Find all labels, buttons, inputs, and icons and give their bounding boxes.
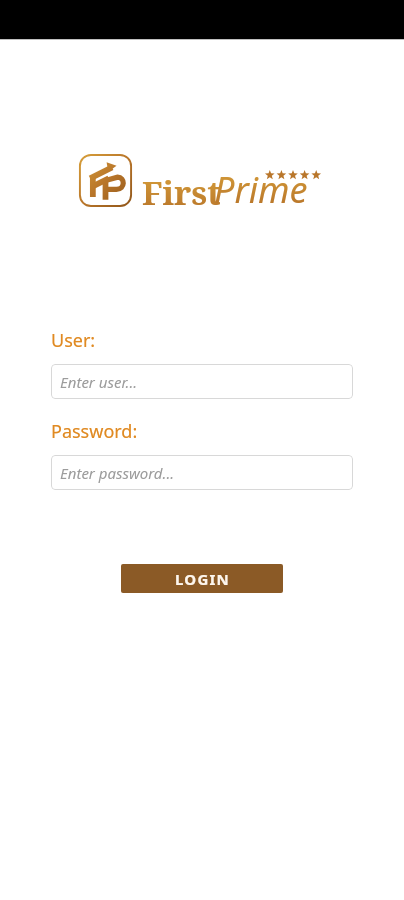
button[interactable]: Password field <box>51 455 353 490</box>
button[interactable]: User field <box>51 364 353 399</box>
staticText: Password: <box>51 419 138 444</box>
staticText: Prime <box>214 165 308 214</box>
staticText: First <box>142 170 221 215</box>
other: First Prime logo <box>78 153 133 208</box>
staticText: User: <box>51 328 96 353</box>
button[interactable]: LOGIN <box>121 564 283 593</box>
staticText: Enter password... <box>60 463 175 483</box>
staticText: Enter user... <box>60 372 138 392</box>
staticText: LOGIN <box>175 569 230 589</box>
